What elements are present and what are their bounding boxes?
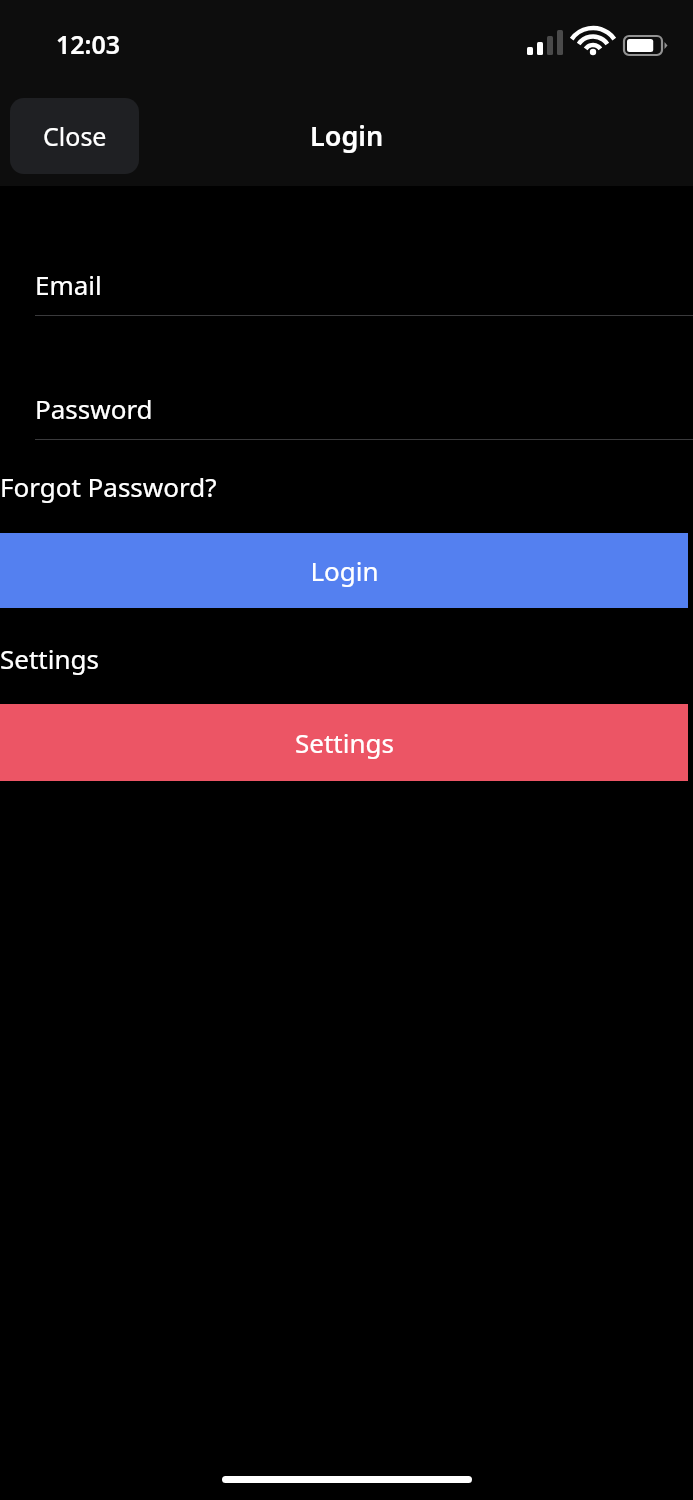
other: Home — [222, 1476, 472, 1483]
button[interactable]: Forgot Password? — [0, 465, 245, 507]
button[interactable]: Close — [10, 98, 139, 174]
staticText: 12:03 — [56, 27, 121, 61]
button[interactable]: Password — [35, 376, 693, 440]
button[interactable]: Settings — [0, 637, 135, 679]
button[interactable]: Settings — [0, 704, 688, 781]
button[interactable]: Login — [0, 533, 688, 608]
button[interactable]: Email — [35, 252, 693, 316]
staticText: Login — [310, 117, 384, 154]
staticText: Password — [35, 391, 153, 426]
staticText: Settings — [0, 641, 99, 676]
staticText: Close — [43, 119, 107, 153]
staticText: Settings — [295, 725, 394, 760]
staticText: Forgot Password? — [0, 469, 217, 504]
staticText: Email — [35, 267, 102, 302]
staticText: Login — [310, 553, 379, 588]
